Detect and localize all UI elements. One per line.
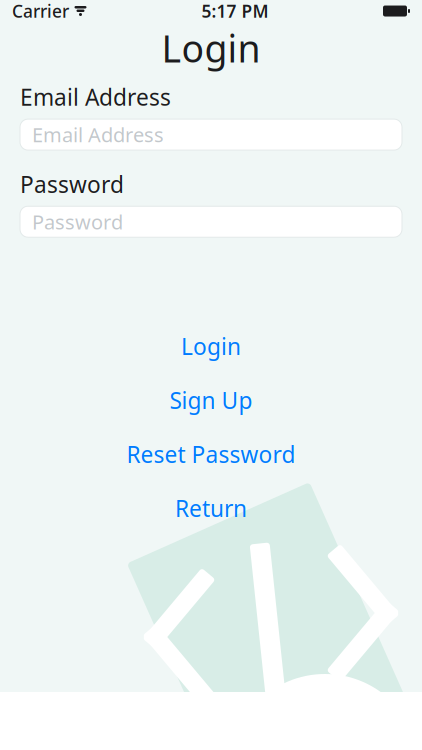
staticText: Email Address bbox=[20, 82, 171, 112]
staticText: Login bbox=[161, 23, 260, 73]
staticText: Email Address bbox=[32, 121, 164, 148]
staticText: Sign Up bbox=[169, 385, 252, 415]
staticText: Password bbox=[20, 169, 124, 199]
button[interactable]: Return bbox=[0, 481, 422, 535]
staticText: Password bbox=[32, 208, 123, 235]
staticText: Reset Password bbox=[126, 439, 295, 469]
button[interactable]: Login bbox=[0, 319, 422, 373]
staticText: Return bbox=[175, 493, 247, 523]
staticText: Carrier bbox=[12, 0, 69, 22]
button[interactable]: Reset Password bbox=[0, 427, 422, 481]
staticText: Login bbox=[181, 331, 241, 361]
staticText: 5:17 PM bbox=[201, 0, 268, 22]
button[interactable]: Sign Up bbox=[0, 373, 422, 427]
